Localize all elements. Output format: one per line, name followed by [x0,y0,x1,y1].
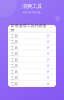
staticText: 工具 [10,69,18,74]
button[interactable]: 工具 [8,39,56,45]
staticText: 工具 [10,57,18,62]
staticText: 工具 [10,82,18,86]
staticText: 工具 [10,33,18,38]
staticText: 开 [47,34,50,37]
staticText: 开 [47,46,50,49]
staticText: 常用清理工具列表推荐 [10,23,46,33]
staticText: 开 [47,64,50,67]
button[interactable]: 工具 [8,45,56,51]
button[interactable]: 工具 [8,81,56,87]
staticText: 开 [47,52,50,55]
staticText: 清爽工具 [22,3,42,10]
button[interactable]: 工具 [8,69,56,75]
staticText: 开 [47,70,50,73]
button[interactable]: 工具 [8,33,56,39]
staticText: 开 [47,82,50,86]
staticText: 工具 [10,63,18,68]
staticText: 开 [47,40,50,43]
button[interactable]: 工具 [8,75,56,81]
staticText: 工具 [10,45,18,50]
staticText: 工具 [10,51,18,56]
staticText: 开 [47,58,50,61]
staticText: 轻松管理设备 [23,11,41,14]
button[interactable]: 工具 [8,63,56,69]
button[interactable]: 工具 [8,51,56,57]
staticText: 工具 [10,75,18,80]
staticText: 开 [47,76,50,79]
staticText: 工具 [10,39,18,44]
button[interactable]: 工具 [8,57,56,63]
